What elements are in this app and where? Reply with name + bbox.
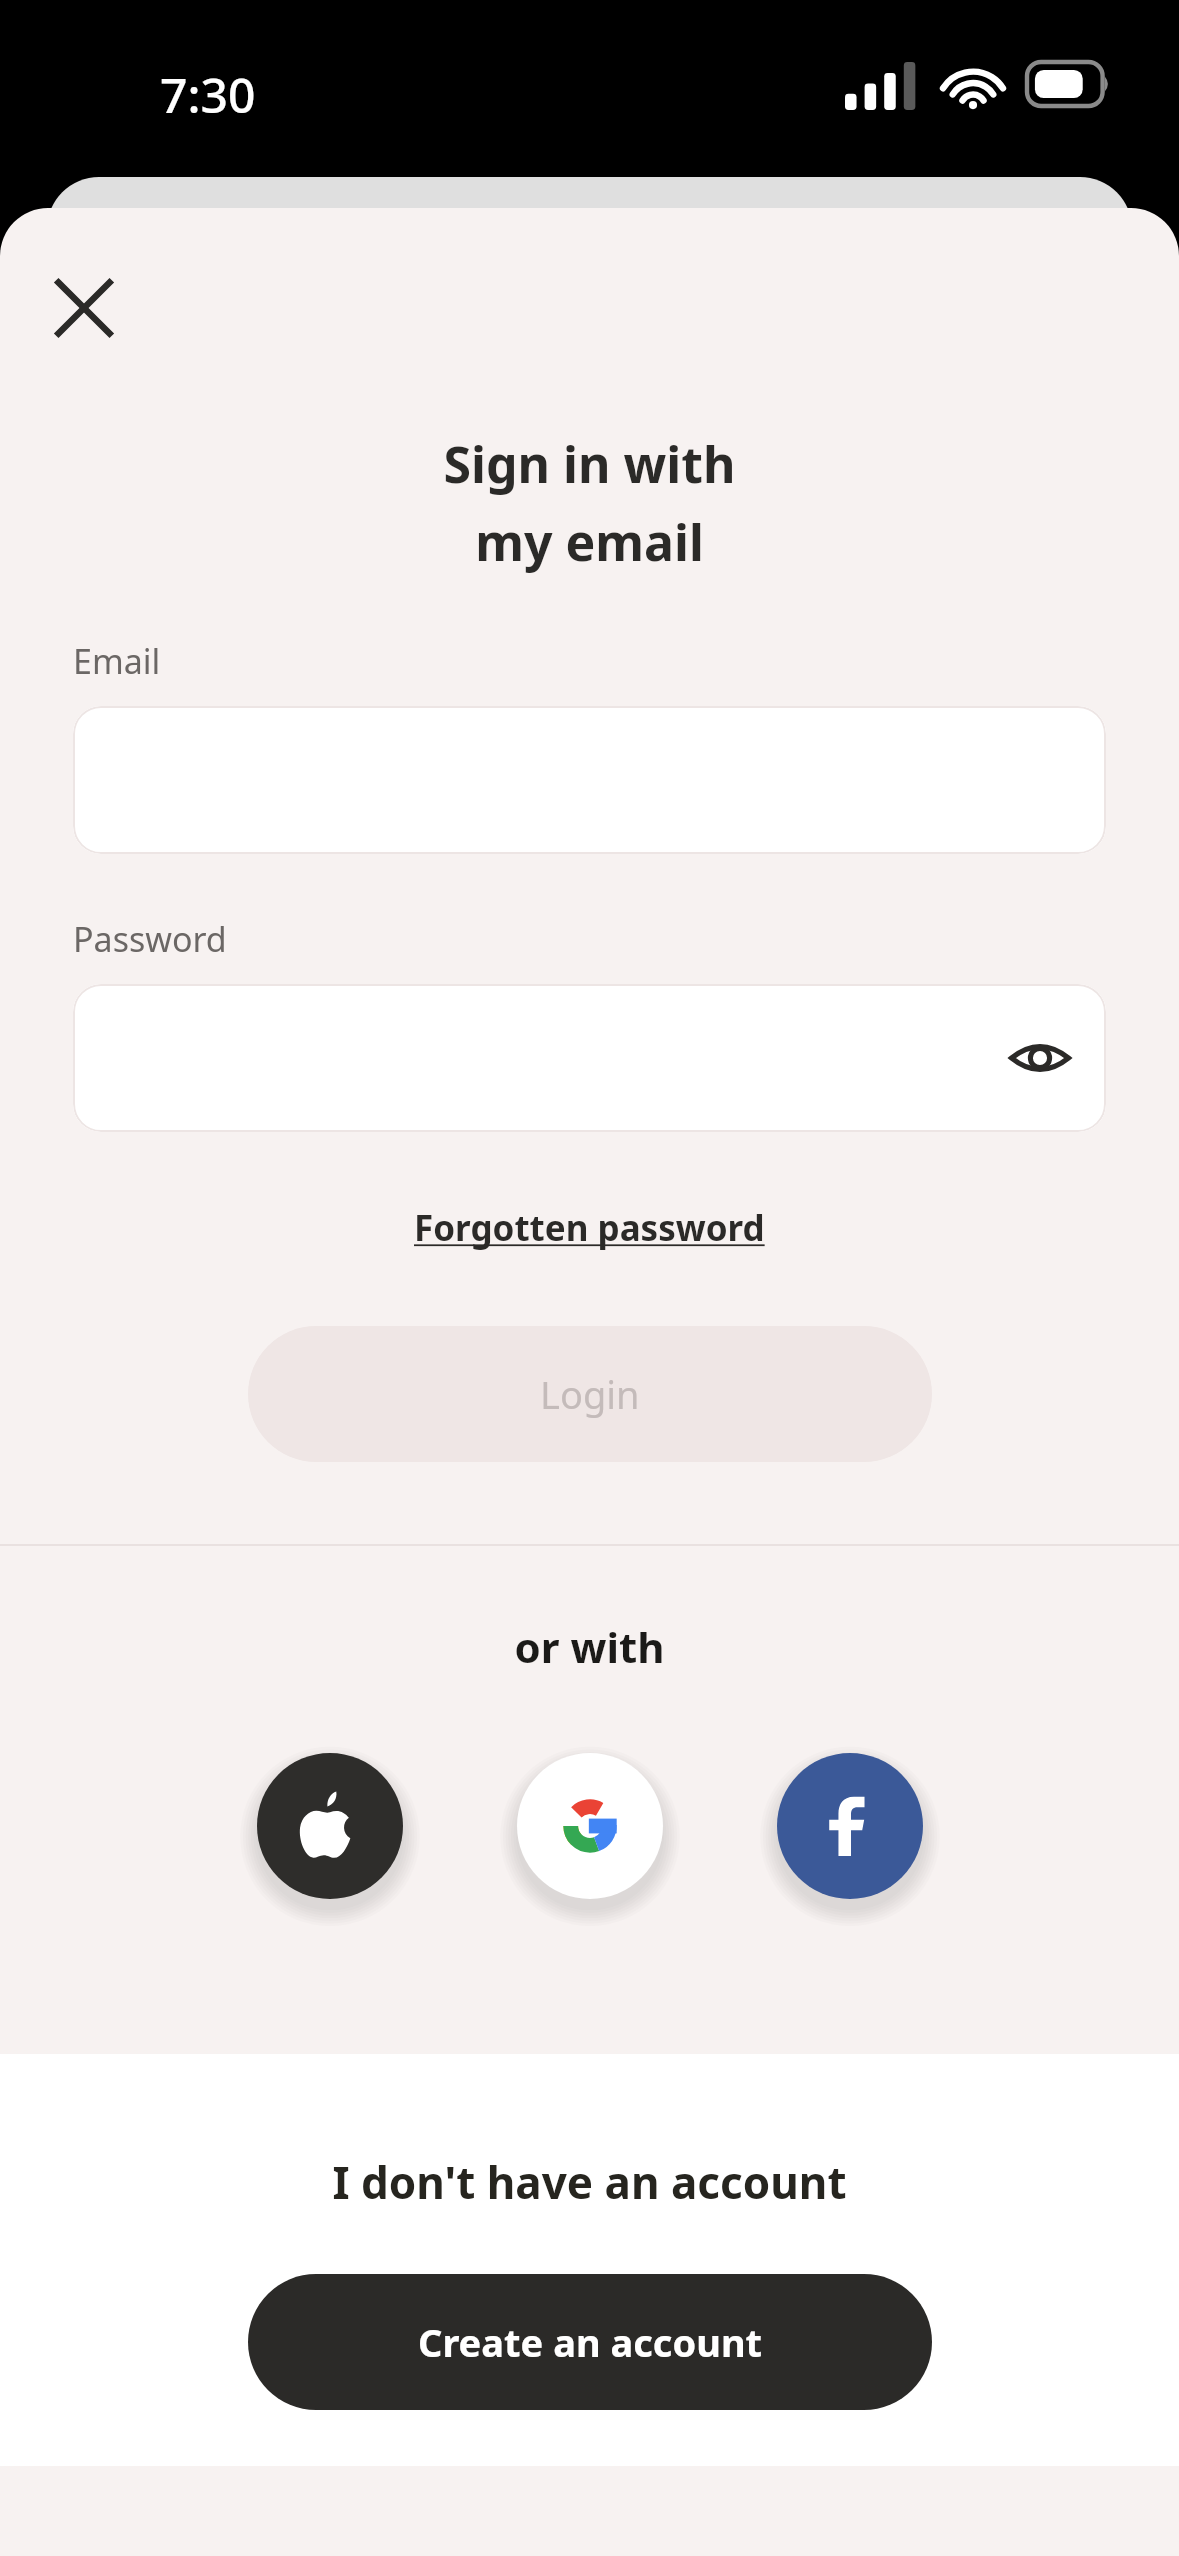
button[interactable]: Close [30,254,138,362]
staticText: Sign in with my email [0,430,1179,576]
button[interactable]: Forgotten password [404,1192,775,1264]
staticText: Login [540,1368,640,1420]
staticText: Password [73,916,227,962]
staticText: Email [73,638,161,684]
staticText: or with [0,1618,1179,1675]
button[interactable]: Sign in with Apple [257,1753,403,1899]
button[interactable]: Show password [992,1010,1088,1106]
staticText: Create an account [418,2316,763,2368]
staticText: Forgotten password [414,1204,765,1252]
staticText: 7:30 [160,62,256,127]
staticText: I don't have an account [332,2152,847,2212]
button[interactable] [73,984,1106,1132]
button[interactable] [73,706,1106,854]
button[interactable]: Login [248,1326,932,1462]
button[interactable]: Sign in with Facebook [777,1753,923,1899]
button[interactable]: Sign in with Google [517,1753,663,1899]
button[interactable]: Create an account [248,2274,932,2410]
